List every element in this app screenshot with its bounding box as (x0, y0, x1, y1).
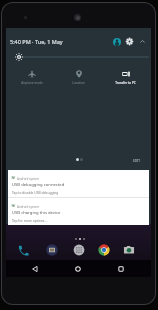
staticText: Android system (17, 205, 39, 209)
staticText: USB debugging connected (12, 182, 65, 188)
button[interactable]: Settings (125, 37, 134, 46)
staticText: Location (72, 81, 85, 85)
staticText: Airplane mode (21, 81, 43, 85)
staticText: EDIT (133, 159, 141, 163)
button[interactable]: Camera (123, 244, 135, 256)
button[interactable]: EDIT (125, 155, 149, 166)
button[interactable]: Collapse (138, 37, 147, 46)
button[interactable]: Back (26, 260, 44, 277)
button[interactable]: Android system (8, 198, 149, 225)
button[interactable]: Airplane mode (8, 70, 55, 94)
staticText: USB charging this device (12, 210, 61, 216)
button[interactable]: Recents (112, 260, 130, 277)
button[interactable]: Chrome (98, 244, 110, 256)
button[interactable]: Android system (8, 170, 149, 197)
staticText: Tap to disable USB debugging (12, 190, 59, 194)
button[interactable]: Brightness (15, 53, 23, 61)
staticText: 5:40 PM · Tue, 1 May (10, 38, 63, 45)
button[interactable]: All apps (73, 244, 85, 256)
staticText: Tap for more options... (12, 218, 48, 222)
staticText: Transfer to PC (115, 81, 136, 85)
button[interactable]: User (112, 37, 121, 46)
button[interactable]: Messages (46, 244, 58, 256)
button[interactable]: Transfer to PC (102, 70, 149, 94)
button[interactable]: Location (55, 70, 102, 94)
button[interactable]: Home (69, 260, 87, 277)
staticText: Android system (17, 177, 39, 181)
button[interactable]: Phone (17, 244, 29, 256)
